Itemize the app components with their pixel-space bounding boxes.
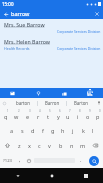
staticText: m — [80, 142, 86, 149]
staticText: u — [66, 113, 70, 120]
staticText: 6 — [59, 109, 61, 113]
button[interactable]: Shift — [0, 138, 14, 153]
button[interactable]: Search — [85, 153, 103, 168]
button[interactable]: f — [38, 123, 48, 138]
button[interactable]: 3 — [22, 108, 33, 123]
button[interactable]: z — [14, 138, 24, 153]
staticText: Mrs. Helen Barrow — [4, 38, 50, 45]
button[interactable]: d — [28, 123, 38, 138]
staticText: a — [10, 127, 14, 134]
button[interactable]: Backspace — [88, 138, 103, 153]
staticText: l — [92, 127, 94, 134]
button[interactable]: h — [58, 123, 68, 138]
button[interactable]: 6 — [53, 108, 63, 123]
button[interactable]: barrow — [11, 10, 93, 17]
staticText: s — [21, 127, 24, 134]
staticText: Corporate Services Division — [57, 29, 101, 34]
staticText: Barron — [45, 100, 60, 106]
staticText: ?123 — [3, 158, 13, 164]
staticText: 4 — [39, 109, 41, 113]
button[interactable]: Clear search — [93, 10, 101, 18]
button[interactable]: Recents — [69, 168, 103, 183]
staticText: 0 — [99, 109, 101, 113]
button[interactable]: Barton — [67, 98, 95, 108]
button[interactable]: l — [88, 123, 98, 138]
button[interactable]: Thumbs up — [51, 88, 77, 98]
button[interactable]: x — [24, 138, 34, 153]
button[interactable]: Microphone — [95, 98, 103, 108]
button[interactable]: c — [34, 138, 44, 153]
button[interactable]: n — [66, 138, 77, 153]
button[interactable]: Mrs. Sue Barrow — [0, 19, 103, 34]
staticText: 8 — [79, 109, 81, 113]
staticText: p — [96, 113, 100, 120]
button[interactable]: m — [77, 138, 88, 153]
staticText: t — [47, 113, 49, 120]
staticText: f — [42, 127, 44, 134]
staticText: x — [28, 142, 31, 149]
button[interactable]: 7 — [63, 108, 73, 123]
button[interactable]: Back — [0, 168, 35, 183]
staticText: barton — [16, 100, 30, 106]
staticText: b — [59, 142, 63, 149]
button[interactable]: v — [44, 138, 55, 153]
staticText: v — [48, 142, 51, 149]
staticText: j — [72, 127, 74, 134]
staticText: Corporate Services Division — [57, 46, 101, 51]
staticText: g — [51, 127, 55, 134]
staticText: 7 — [69, 109, 71, 113]
staticText: d — [31, 127, 35, 134]
staticText: 3 — [29, 109, 31, 113]
staticText: 15:00 — [2, 1, 14, 7]
button[interactable]: Back — [2, 10, 10, 18]
button[interactable]: Home — [35, 168, 69, 183]
staticText: barrow — [11, 10, 30, 17]
staticText: Barton — [74, 100, 89, 106]
button[interactable]: j — [68, 123, 78, 138]
button[interactable]: Period — [76, 153, 85, 168]
staticText: o — [86, 113, 90, 120]
staticText: Health Records Manager — [4, 46, 30, 51]
staticText: r — [37, 113, 40, 120]
staticText: . — [80, 156, 82, 163]
button[interactable]: More suggestions — [0, 98, 9, 108]
staticText: , — [19, 156, 21, 163]
staticText: 1 — [7, 109, 9, 113]
button[interactable]: Mrs. Helen Barrow — [0, 36, 103, 51]
button[interactable]: a — [6, 123, 17, 138]
button[interactable]: Notes — [0, 88, 25, 98]
button[interactable]: barton — [9, 98, 37, 108]
staticText: k — [82, 127, 85, 134]
button[interactable]: k — [78, 123, 88, 138]
staticText: 2 — [18, 109, 20, 113]
staticText: z — [18, 142, 21, 149]
button[interactable]: 8 — [73, 108, 83, 123]
button[interactable]: ?123 — [0, 153, 16, 168]
button[interactable]: 2 — [11, 108, 22, 123]
staticText: Mrs. Sue Barrow — [4, 21, 45, 28]
staticText: y — [57, 113, 60, 120]
staticText: h — [61, 127, 65, 134]
staticText: i — [77, 113, 79, 120]
staticText: e — [26, 113, 30, 120]
button[interactable]: 4 — [33, 108, 43, 123]
staticText: NHs — [87, 93, 93, 97]
button[interactable]: s — [17, 123, 28, 138]
button[interactable]: Emoji — [24, 153, 33, 168]
button[interactable]: 0 — [93, 108, 103, 123]
button[interactable]: 9 — [83, 108, 93, 123]
button[interactable]: Location — [25, 88, 51, 98]
button[interactable]: b — [55, 138, 66, 153]
button[interactable]: Barron — [38, 98, 66, 108]
button[interactable]: 1 — [0, 108, 11, 123]
button[interactable]: 5 — [43, 108, 53, 123]
staticText: 9 — [89, 109, 91, 113]
staticText: w — [14, 113, 19, 120]
button[interactable]: Share — [77, 88, 103, 98]
staticText: c — [38, 142, 41, 149]
staticText: 5 — [49, 109, 51, 113]
staticText: q — [4, 113, 8, 120]
button[interactable]: g — [48, 123, 58, 138]
button[interactable]: Comma — [16, 153, 24, 168]
